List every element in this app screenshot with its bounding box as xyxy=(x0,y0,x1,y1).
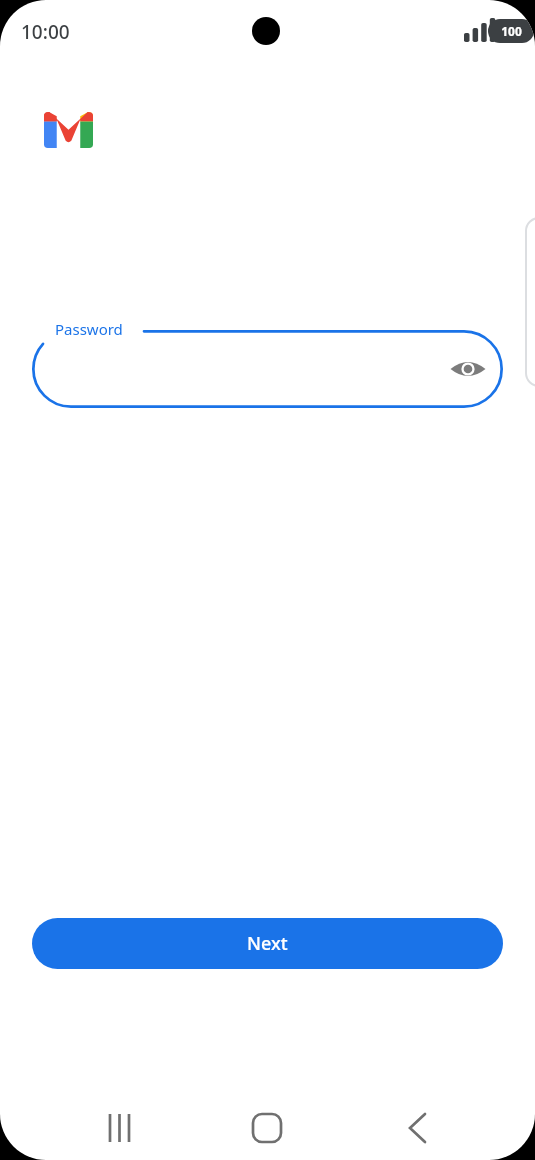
button[interactable]: Next xyxy=(32,918,503,969)
staticText: Password xyxy=(55,319,123,339)
button[interactable]: Back xyxy=(385,1100,451,1156)
staticText: 10:00 xyxy=(21,19,70,45)
button[interactable] xyxy=(32,330,503,408)
button[interactable]: Recent apps xyxy=(86,1100,152,1156)
button[interactable]: Home xyxy=(234,1100,300,1156)
staticText: 100 xyxy=(501,23,522,39)
staticText: Next xyxy=(247,931,288,956)
